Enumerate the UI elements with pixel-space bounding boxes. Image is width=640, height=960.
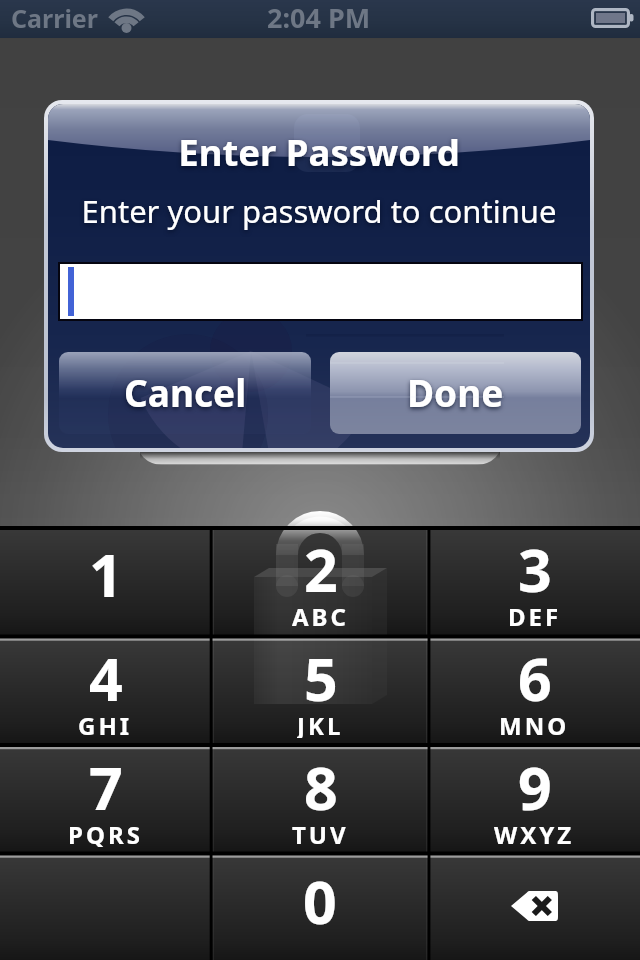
- button[interactable]: 6: [429, 637, 640, 746]
- staticText: Enter Password: [44, 127, 594, 177]
- staticText: Carrier: [11, 1, 98, 35]
- button[interactable]: 2: [211, 528, 429, 637]
- staticText: 4: [89, 638, 123, 718]
- button[interactable]: 4: [0, 637, 211, 746]
- button[interactable]: [0, 855, 211, 960]
- button[interactable]: [60, 264, 581, 319]
- button[interactable]: 0: [211, 855, 429, 960]
- staticText: 1: [89, 534, 123, 614]
- staticText: 2:04 PM: [267, 0, 371, 36]
- staticText: 8: [304, 747, 338, 827]
- staticText: DEF: [508, 600, 562, 629]
- other: Delete: [511, 891, 558, 921]
- staticText: Enter your password to continue: [44, 190, 594, 232]
- staticText: 5: [304, 638, 338, 718]
- button[interactable]: 3: [429, 528, 640, 637]
- button[interactable]: 8: [211, 746, 429, 855]
- staticText: 9: [518, 747, 552, 827]
- staticText: 7: [89, 747, 123, 827]
- button[interactable]: Done: [330, 352, 581, 434]
- button[interactable]: 7: [0, 746, 211, 855]
- staticText: 6: [518, 638, 552, 718]
- staticText: 0: [303, 861, 337, 941]
- button[interactable]: Cancel: [59, 352, 311, 434]
- button[interactable]: 1: [0, 528, 211, 637]
- staticText: 3: [518, 529, 552, 609]
- staticText: WXYZ: [494, 818, 575, 847]
- staticText: TUV: [292, 818, 349, 847]
- staticText: Done: [407, 367, 504, 417]
- staticText: MNO: [499, 709, 570, 738]
- button[interactable]: 5: [211, 637, 429, 746]
- button[interactable]: Delete: [429, 855, 640, 960]
- staticText: JKL: [297, 709, 344, 738]
- button[interactable]: 9: [429, 746, 640, 855]
- staticText: ABC: [292, 600, 349, 629]
- staticText: 2: [304, 529, 338, 609]
- staticText: Cancel: [124, 367, 247, 417]
- staticText: GHI: [78, 709, 133, 738]
- staticText: PQRS: [68, 818, 143, 847]
